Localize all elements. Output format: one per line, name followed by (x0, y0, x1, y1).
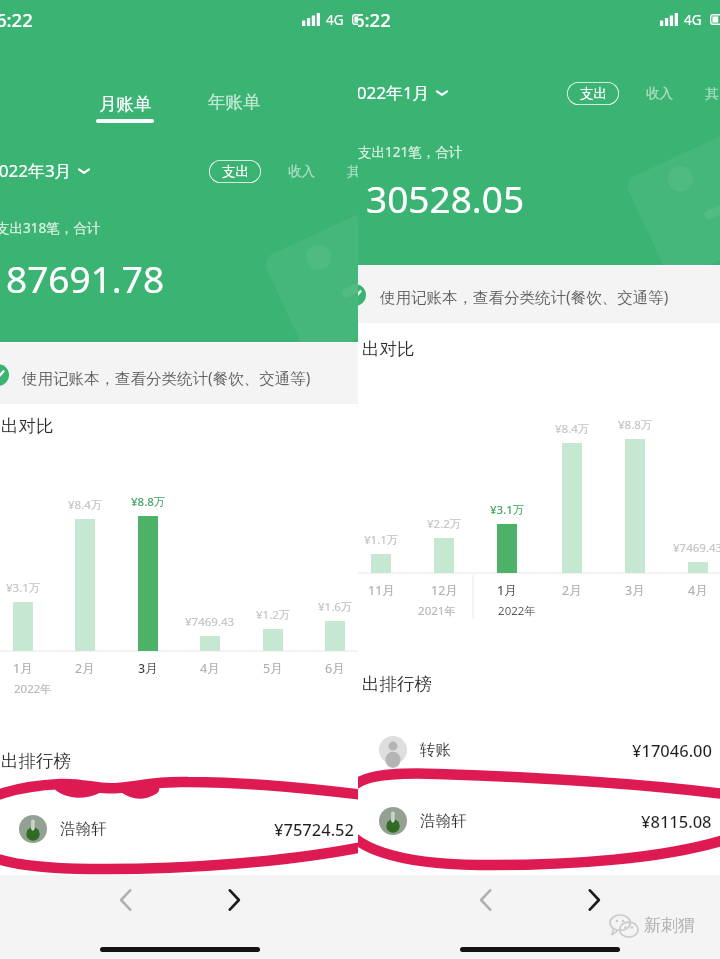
staticText: ¥8115.08 (641, 810, 712, 832)
staticText: 87691.78 (6, 253, 165, 303)
staticText: 2月 (75, 660, 95, 677)
staticText: 支出318笔，合计 (0, 219, 101, 237)
staticText: 6:22 (358, 7, 391, 32)
staticText: ¥8.8万 (131, 494, 166, 510)
staticText: ¥75724.52 (274, 818, 354, 840)
button[interactable]: 浩翰轩 (358, 793, 720, 849)
staticText: 出对比 (1, 415, 54, 437)
button[interactable]: 支出 (209, 160, 261, 183)
staticText: 2022年1月 (358, 81, 430, 104)
button[interactable]: 收入 (283, 160, 319, 182)
staticText: 2月 (562, 582, 582, 599)
staticText: 使用记账本，查看分类统计(餐饮、交通等) (380, 286, 669, 307)
button[interactable]: 支出 (567, 82, 619, 105)
staticText: 浩翰轩 (60, 819, 107, 839)
button[interactable]: 收入 (641, 82, 677, 104)
staticText: ¥8.4万 (555, 421, 590, 437)
staticText: 收入 (646, 85, 673, 102)
staticText: 收入 (288, 163, 315, 180)
staticText: 支出121笔，合计 (358, 143, 463, 161)
staticText: ¥7469.43 (673, 540, 720, 556)
staticText: 3月 (138, 660, 158, 677)
staticText: ¥2.2万 (427, 516, 462, 532)
staticText: 4G (684, 11, 702, 29)
staticText: 其 (347, 163, 358, 180)
staticText: 4月 (688, 582, 708, 599)
staticText: ¥7469.43 (185, 614, 235, 630)
button[interactable]: Back (106, 880, 146, 920)
staticText: 2022年3月 (0, 159, 72, 182)
staticText: 30528.05 (366, 173, 525, 223)
staticText: 3月 (625, 582, 645, 599)
staticText: 11月 (368, 582, 395, 599)
button[interactable]: 浩翰轩 (0, 801, 358, 857)
staticText: 2022年 (498, 603, 536, 619)
staticText: ¥3.1万 (6, 580, 41, 596)
staticText: 1月 (497, 582, 517, 599)
staticText: 2021年 (418, 603, 456, 619)
staticText: 12月 (431, 582, 458, 599)
button[interactable]: Back (466, 880, 506, 920)
staticText: ¥1.1万 (364, 532, 399, 548)
staticText: ¥3.1万 (490, 502, 525, 518)
staticText: 4月 (200, 660, 220, 677)
staticText: ¥8.8万 (618, 417, 653, 433)
button[interactable]: 年账单 (204, 84, 268, 120)
button[interactable]: 使用记账本，查看分类统计(餐饮、交通等) (0, 343, 358, 404)
staticText: 6月 (325, 660, 345, 677)
staticText: 支出 (580, 85, 607, 102)
staticText: 月账单 (99, 93, 152, 115)
staticText: 4G (326, 11, 344, 29)
button[interactable]: Forward (214, 880, 254, 920)
staticText: ¥17046.00 (632, 739, 712, 761)
staticText: ¥8.4万 (68, 497, 103, 513)
staticText: 1月 (13, 660, 33, 677)
button[interactable]: Forward (574, 880, 614, 920)
staticText: 6:22 (0, 7, 33, 32)
staticText: 其 (705, 85, 719, 102)
staticText: 2022年 (14, 681, 52, 697)
staticText: 浩翰轩 (420, 811, 467, 831)
staticText: 5月 (263, 660, 283, 677)
staticText: 出排行榜 (362, 673, 432, 695)
staticText: 出对比 (362, 338, 415, 360)
button[interactable]: 使用记账本，查看分类统计(餐饮、交通等) (358, 266, 720, 323)
button[interactable]: 转账 (358, 722, 720, 778)
button[interactable]: 月账单 (92, 84, 158, 128)
staticText: 年账单 (208, 91, 261, 113)
staticText: 支出 (222, 163, 249, 180)
staticText: ¥1.2万 (256, 607, 291, 623)
staticText: 新刺猬 (644, 915, 695, 936)
staticText: ¥1.6万 (318, 599, 353, 615)
staticText: 出排行榜 (1, 750, 71, 772)
staticText: 使用记账本，查看分类统计(餐饮、交通等) (22, 367, 311, 388)
staticText: 转账 (420, 740, 451, 760)
